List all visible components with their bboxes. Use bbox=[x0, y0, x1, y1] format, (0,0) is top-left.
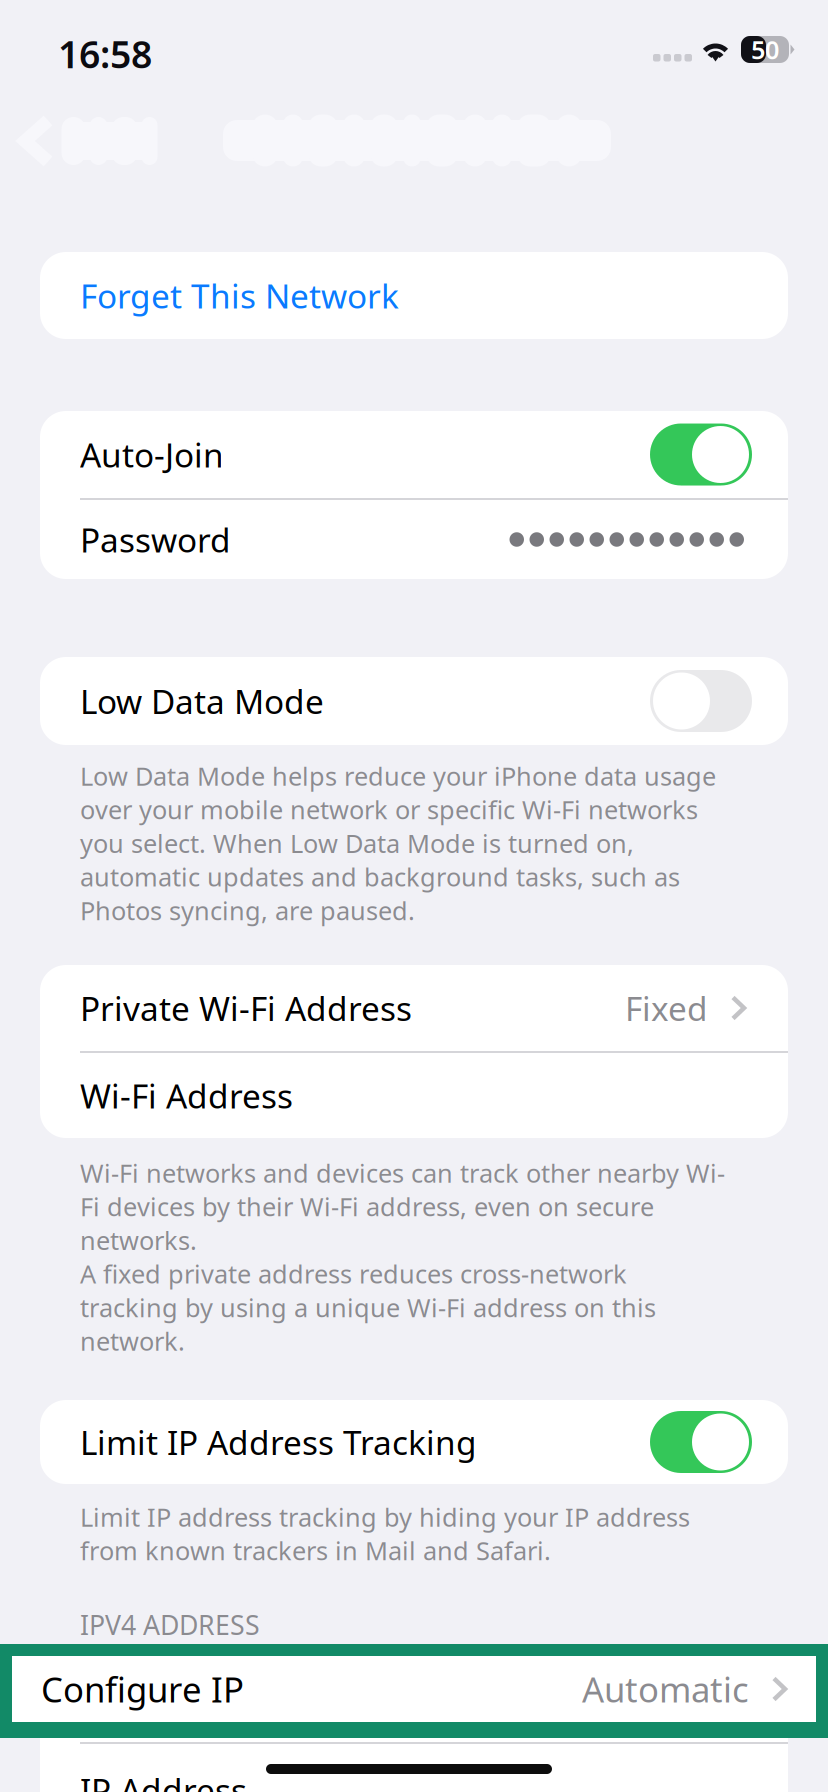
button[interactable]: Limit IP Address Tracking bbox=[650, 1411, 752, 1473]
staticText: Auto-Join bbox=[80, 432, 224, 477]
staticText: Fixed bbox=[625, 986, 708, 1030]
staticText: Low Data Mode helps reduce your iPhone d… bbox=[80, 759, 716, 927]
staticText: Limit IP Address Tracking bbox=[80, 1420, 477, 1464]
staticText: Low Data Mode bbox=[80, 679, 324, 723]
staticText: Private Wi‑Fi Address bbox=[80, 986, 412, 1030]
button[interactable]: Forget This Network bbox=[40, 252, 788, 339]
staticText: IPV4 ADDRESS bbox=[80, 1607, 260, 1642]
button[interactable]: Wi‑Fi Address bbox=[40, 1053, 788, 1138]
button[interactable]: Auto-Join bbox=[650, 423, 752, 485]
staticText: Configure IP bbox=[41, 1666, 244, 1712]
button[interactable]: Low Data Mode bbox=[650, 670, 752, 732]
staticText: 16:58 bbox=[58, 29, 152, 79]
staticText: Limit IP address tracking by hiding your… bbox=[80, 1500, 690, 1567]
staticText: Forget This Network bbox=[80, 273, 399, 318]
staticText: IP Address bbox=[80, 1768, 247, 1792]
staticText: Automatic bbox=[582, 1666, 749, 1712]
button[interactable]: Configure IP bbox=[12, 1656, 816, 1722]
staticText: Password bbox=[80, 517, 231, 562]
button[interactable]: Private Wi‑Fi Address bbox=[40, 965, 788, 1051]
staticText: Wi-Fi networks and devices can track oth… bbox=[80, 1156, 725, 1358]
staticText: Wi‑Fi Address bbox=[80, 1073, 293, 1118]
staticText: 50 bbox=[751, 33, 779, 66]
